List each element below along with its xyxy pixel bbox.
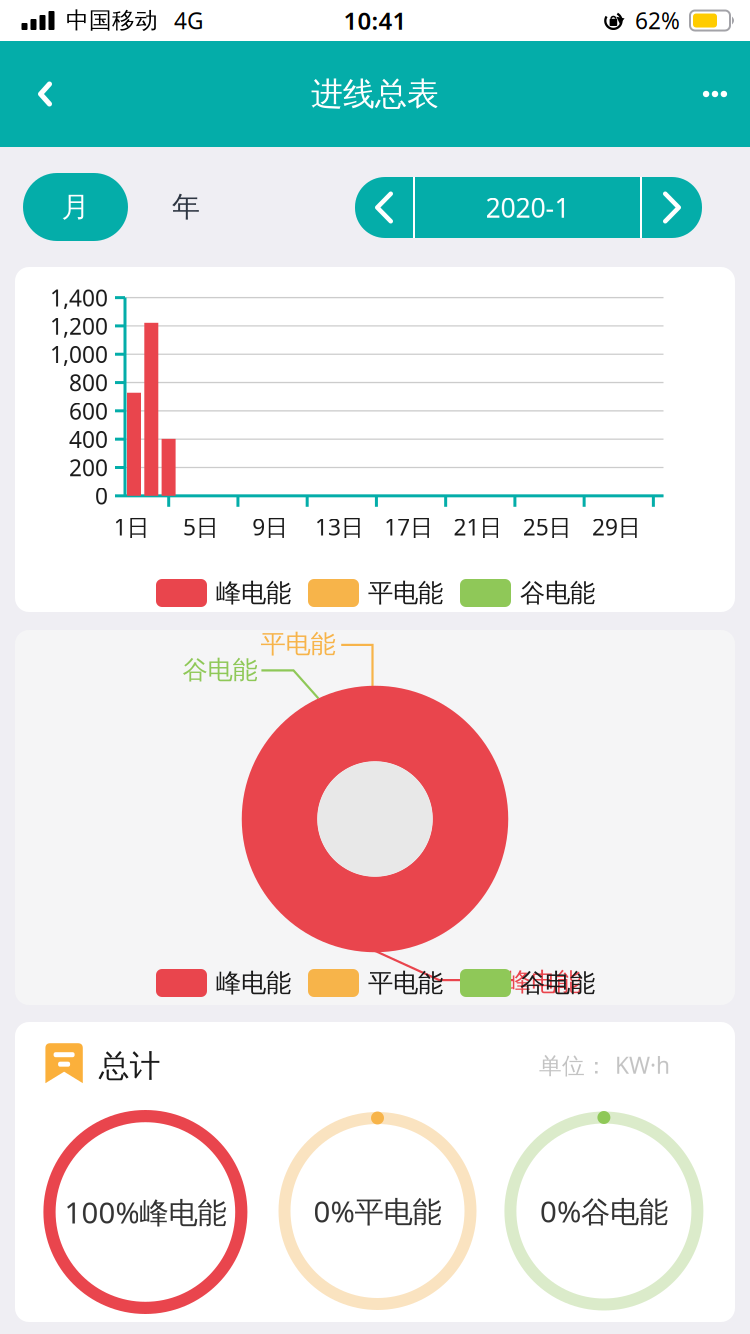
staticText: 62% [635,5,680,35]
button[interactable]: 年 [141,173,231,241]
staticText: 1,000 [50,339,108,369]
staticText: 5日 [183,512,219,542]
staticText: 谷电能 [182,654,257,685]
staticText: 0%谷电能 [540,1191,668,1230]
staticText: 平电能 [368,967,443,998]
staticText: 谷电能 [520,967,595,998]
staticText: 600 [69,396,108,426]
staticText: 峰电能 [506,966,581,997]
staticText: 中国移动 [66,7,158,34]
staticText: 29日 [592,512,641,542]
staticText: 400 [69,424,108,454]
staticText: 平电能 [368,577,443,608]
staticText: 平电能 [261,628,336,659]
button[interactable]: More options [680,51,750,137]
staticText: 0 [95,481,108,511]
staticText: 13日 [315,512,364,542]
staticText: 25日 [523,512,572,542]
staticText: 17日 [384,512,433,542]
button[interactable]: 月 [23,173,128,241]
staticText: 年 [172,190,200,224]
staticText: 800 [69,367,108,398]
staticText: 1日 [114,512,150,542]
staticText: 21日 [453,512,502,542]
button[interactable]: Previous period [355,177,413,238]
staticText: 1,400 [50,282,108,313]
staticText: 4G [174,5,204,35]
staticText: 2020-1 [485,190,569,225]
staticText: 总计 [99,1047,161,1085]
staticText: 月 [61,190,89,224]
staticText: 单位： KW·h [539,1050,670,1080]
button[interactable]: Next period [642,177,702,238]
button[interactable]: 2020-1 [415,177,640,238]
staticText: 峰电能 [216,577,291,608]
staticText: 谷电能 [520,577,595,608]
staticText: 9日 [252,512,288,542]
staticText: 进线总表 [311,74,439,114]
staticText: 200 [69,452,108,482]
staticText: 0%平电能 [313,1191,441,1230]
staticText: 峰电能 [216,967,291,998]
staticText: 1,200 [50,311,108,341]
staticText: 100%峰电能 [64,1192,226,1231]
button[interactable]: Back [10,51,80,137]
staticText: 10:41 [343,5,406,36]
